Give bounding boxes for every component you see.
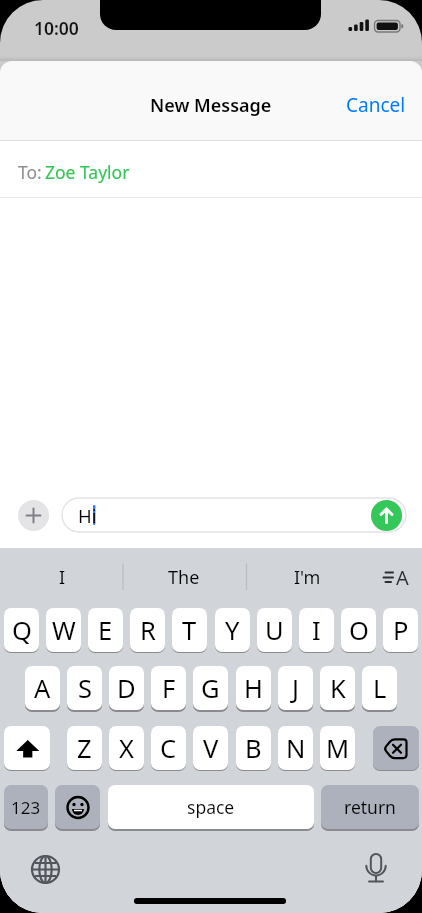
staticText: 123	[11, 796, 41, 819]
button[interactable]: R	[130, 608, 165, 652]
staticText: T	[182, 613, 197, 648]
staticText: M	[326, 731, 350, 766]
button[interactable]: N	[278, 726, 313, 770]
staticText: J	[292, 671, 299, 706]
button[interactable]: G	[193, 666, 228, 710]
button[interactable]	[18, 500, 49, 531]
staticText: 10:00	[34, 16, 79, 38]
button[interactable]: T	[172, 608, 207, 652]
staticText: O	[349, 613, 369, 648]
staticText: L	[373, 671, 387, 706]
button[interactable]: C	[151, 726, 186, 770]
button[interactable]: 123	[4, 785, 48, 829]
button[interactable]: W	[46, 608, 81, 652]
staticText: K	[330, 671, 346, 706]
staticText: Y	[225, 613, 240, 648]
staticText: Q	[12, 613, 32, 648]
button[interactable]: H	[236, 666, 271, 710]
staticText: To:	[18, 160, 42, 184]
button[interactable]: return	[321, 785, 419, 829]
button[interactable]: L	[362, 666, 397, 710]
button[interactable]: Cancel	[330, 88, 406, 122]
button[interactable]	[55, 785, 100, 829]
staticText: R	[140, 613, 156, 648]
button[interactable]: P	[383, 608, 418, 652]
staticText: V	[203, 731, 219, 766]
button[interactable]: V	[193, 726, 228, 770]
button[interactable]: M	[320, 726, 355, 770]
button[interactable]: Z	[67, 726, 102, 770]
staticText: G	[201, 671, 220, 706]
button[interactable]: I	[299, 608, 334, 652]
button[interactable]: Q	[4, 608, 39, 652]
button[interactable]: U	[257, 608, 292, 652]
button[interactable]: A	[25, 666, 60, 710]
staticText: A	[396, 564, 409, 590]
staticText: W	[52, 613, 76, 648]
staticText: return	[344, 795, 396, 819]
button[interactable]: X	[109, 726, 144, 770]
staticText: I'm	[294, 565, 321, 590]
staticText: H	[244, 671, 263, 706]
button[interactable]	[373, 726, 419, 770]
staticText: The	[168, 565, 200, 590]
button[interactable]: F	[151, 666, 186, 710]
button[interactable]: K	[320, 666, 355, 710]
staticText: C	[160, 731, 177, 766]
staticText: X	[119, 731, 134, 766]
button[interactable]: S	[67, 666, 102, 710]
staticText: U	[265, 613, 284, 648]
staticText: D	[117, 671, 136, 706]
button[interactable]: space	[108, 785, 314, 829]
staticText: E	[98, 613, 113, 648]
staticText: Hi	[78, 503, 97, 527]
staticText: P	[393, 613, 409, 648]
button[interactable]: J	[278, 666, 313, 710]
button[interactable]: Y	[215, 608, 250, 652]
button[interactable]: B	[236, 726, 271, 770]
staticText: I	[59, 565, 66, 590]
button[interactable]	[0, 0, 422, 913]
staticText: N	[286, 731, 306, 766]
button[interactable]: O	[341, 608, 376, 652]
button[interactable]: D	[109, 666, 144, 710]
staticText: Cancel	[346, 92, 406, 118]
button[interactable]	[371, 500, 402, 531]
button[interactable]: E	[88, 608, 123, 652]
staticText: Zoe Taylor	[45, 160, 130, 184]
staticText: Z	[77, 731, 92, 766]
staticText: I	[312, 613, 321, 648]
staticText: F	[162, 671, 176, 706]
staticText: S	[78, 671, 92, 706]
staticText: space	[187, 795, 235, 819]
staticText: B	[245, 731, 262, 766]
button[interactable]	[62, 498, 406, 532]
button[interactable]	[0, 141, 422, 197]
staticText: New Message	[150, 93, 272, 118]
button[interactable]	[4, 726, 50, 770]
staticText: A	[34, 671, 51, 706]
